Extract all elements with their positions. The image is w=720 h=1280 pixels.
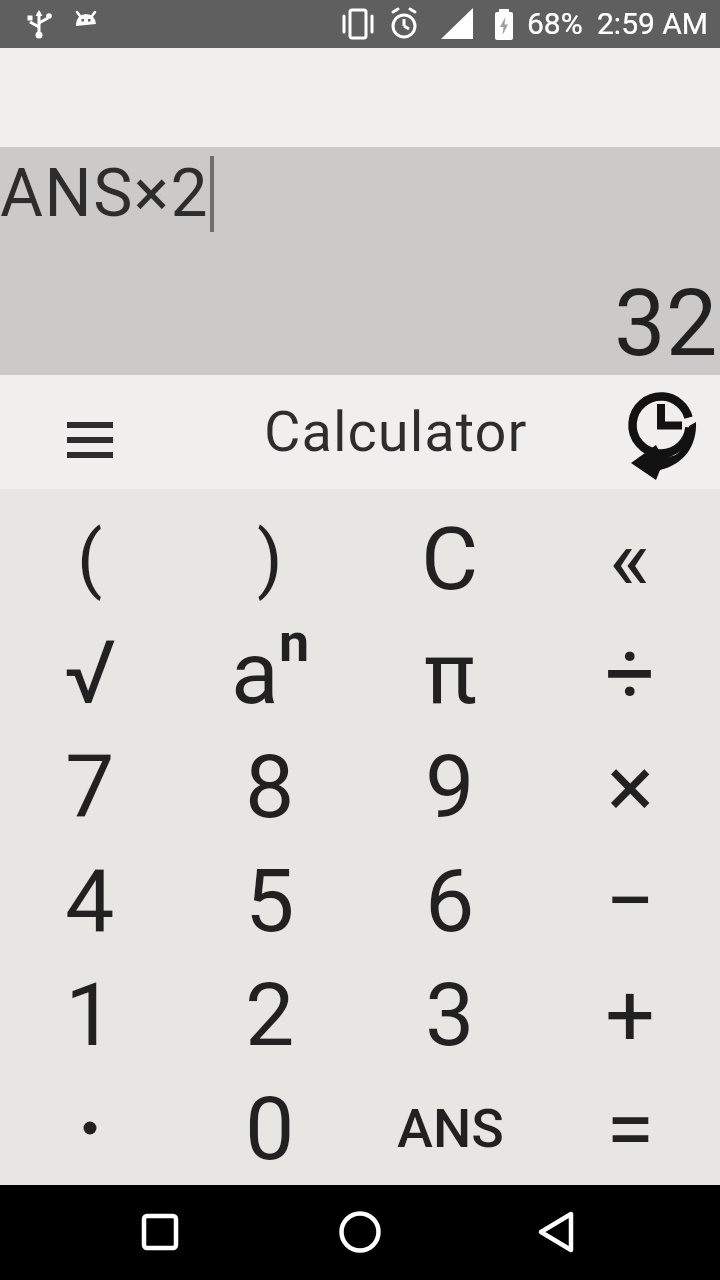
button[interactable]: 2 [180,957,360,1071]
button[interactable]: ) [180,501,360,615]
button[interactable]: 5 [180,843,360,957]
button[interactable]: π [360,615,540,729]
staticText: × [607,735,654,838]
staticText: ÷ [605,621,656,724]
staticText: 9 [425,735,475,838]
button[interactable] [125,1197,195,1267]
staticText: a [231,621,279,724]
staticText: 7 [65,735,115,838]
button[interactable]: + [540,957,720,1071]
button[interactable]: 0 [180,1071,360,1185]
button[interactable] [52,402,128,478]
staticText: ( [77,515,103,602]
staticText: ANS [397,1097,504,1160]
button[interactable]: ÷ [540,615,720,729]
button[interactable] [522,1197,592,1267]
button[interactable]: 7 [0,729,180,843]
button[interactable]: C [360,501,540,615]
button[interactable]: ANS [360,1071,540,1185]
staticText: Calculator [264,399,528,465]
button[interactable] [608,382,708,482]
staticText: 5 [245,849,295,952]
staticText: √ [64,621,117,724]
button[interactable]: 6 [360,843,540,957]
staticText: 3 [425,963,475,1066]
staticText: 2 [245,963,295,1066]
staticText: 2:59 AM [597,6,709,41]
staticText: 4 [65,849,115,952]
button[interactable]: − [540,843,720,957]
staticText: − [605,849,656,952]
staticText: C [421,507,479,610]
button[interactable]: 3 [360,957,540,1071]
button[interactable]: a [180,615,360,729]
staticText: + [605,963,655,1066]
button[interactable]: × [540,729,720,843]
staticText: « [609,507,651,610]
button[interactable]: 8 [180,729,360,843]
staticText: 68% [527,6,583,41]
staticText: π [424,621,477,724]
staticText: n [279,611,310,674]
button[interactable]: 4 [0,843,180,957]
button[interactable]: √ [0,615,180,729]
staticText: 0 [245,1077,295,1180]
staticText: 32 [614,270,718,378]
staticText: 1 [65,963,115,1066]
button[interactable] [325,1197,395,1267]
staticText: ANS×2 [0,155,210,232]
staticText: 6 [425,849,475,952]
button[interactable]: = [540,1071,720,1185]
staticText: = [606,1077,655,1180]
staticText: 8 [245,735,295,838]
button[interactable] [0,1071,180,1185]
button[interactable]: 1 [0,957,180,1071]
staticText: ) [257,515,283,602]
button[interactable]: ( [0,501,180,615]
button[interactable]: « [540,501,720,615]
button[interactable]: 9 [360,729,540,843]
